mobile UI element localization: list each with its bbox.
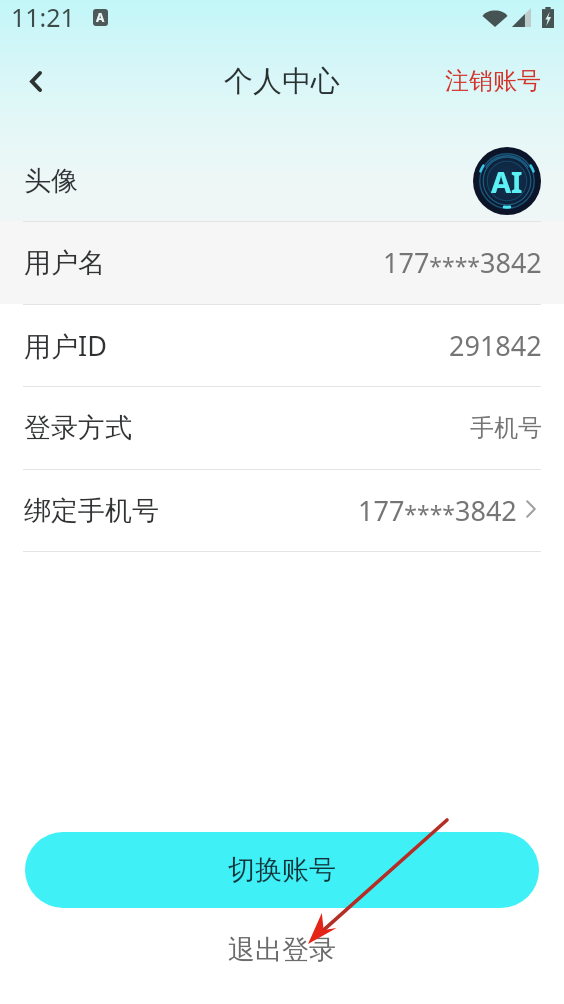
button[interactable]: 切换账号 xyxy=(25,832,539,908)
staticText: 177****3842 xyxy=(383,244,542,282)
staticText: 绑定手机号 xyxy=(24,494,159,528)
staticText: 11:21 xyxy=(11,0,75,34)
staticText: 用户名 xyxy=(24,246,105,280)
button[interactable]: Back xyxy=(14,59,58,103)
other: Avatar xyxy=(473,147,541,215)
staticText: 登录方式 xyxy=(24,411,132,445)
staticText: 个人中心 xyxy=(224,63,340,100)
staticText: 291842 xyxy=(449,327,542,364)
button[interactable]: 用户名 xyxy=(0,221,564,304)
staticText: 注销账号 xyxy=(445,66,541,96)
staticText: 头像 xyxy=(24,164,78,198)
staticText: AI xyxy=(491,162,523,201)
button[interactable]: 退出登录 xyxy=(228,930,336,970)
staticText: 177****3842 xyxy=(358,492,517,530)
staticText: A xyxy=(96,9,105,25)
button[interactable]: 头像 xyxy=(0,139,564,222)
button[interactable]: 注销账号 xyxy=(445,46,541,116)
button[interactable]: 用户ID xyxy=(0,304,564,387)
staticText: 手机号 xyxy=(470,413,542,443)
staticText: 退出登录 xyxy=(228,933,336,967)
staticText: 切换账号 xyxy=(228,853,336,887)
button[interactable]: 登录方式 xyxy=(0,386,564,469)
button[interactable]: 绑定手机号 xyxy=(0,469,564,552)
staticText: 用户ID xyxy=(24,327,107,364)
